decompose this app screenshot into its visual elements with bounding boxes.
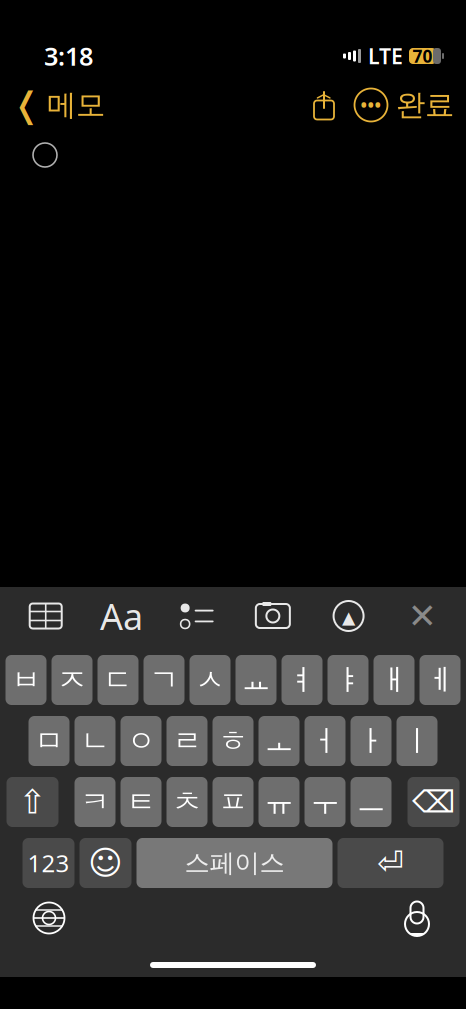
button[interactable]: ㅣ <box>396 716 437 766</box>
staticText: 3:18 <box>44 39 93 73</box>
staticText: ㅂ <box>11 662 40 698</box>
button[interactable]: ㄹ <box>166 716 207 766</box>
button[interactable]: ㄷ <box>97 655 138 705</box>
staticText: ▲ <box>342 608 355 627</box>
button[interactable]: ㅡ <box>350 777 391 827</box>
staticText: ❬ <box>12 85 41 125</box>
button[interactable]: 다음 키보드 <box>22 894 76 942</box>
button[interactable]: 닫기 <box>394 594 450 638</box>
staticText: ⇧ <box>18 783 46 821</box>
button[interactable]: ⇧ <box>6 777 58 827</box>
button[interactable]: ㅎ <box>212 716 253 766</box>
button[interactable]: 받아쓰기 <box>390 894 444 942</box>
staticText: ⌫ <box>412 785 455 819</box>
staticText: ㄷ <box>103 662 132 698</box>
button[interactable]: ㅅ <box>189 655 230 705</box>
button[interactable]: ㅓ <box>304 716 345 766</box>
staticText: ㄴ <box>80 723 109 759</box>
staticText: ㅣ <box>402 723 431 759</box>
staticText: ㅋ <box>80 784 109 820</box>
staticText: ••• <box>360 93 381 116</box>
button[interactable]: ㄴ <box>74 716 115 766</box>
staticText: ︿ <box>316 84 332 104</box>
staticText: ✕ <box>408 596 437 636</box>
button[interactable]: ⌫ <box>407 777 459 827</box>
staticText: 완료 <box>396 87 454 123</box>
staticText: ㅊ <box>172 784 201 820</box>
staticText: ㅕ <box>287 662 316 698</box>
staticText: ㅛ <box>241 662 270 698</box>
staticText: ㅓ <box>310 723 339 759</box>
staticText: ㅎ <box>218 723 247 759</box>
button[interactable]: ㅋ <box>74 777 115 827</box>
button[interactable]: ㅑ <box>327 655 368 705</box>
button[interactable]: ㅌ <box>120 777 161 827</box>
button[interactable]: ❬ <box>0 79 105 131</box>
button[interactable]: 123 <box>22 838 74 888</box>
staticText: ㅌ <box>126 784 155 820</box>
staticText: ㅁ <box>34 723 63 759</box>
staticText: ㅔ <box>425 662 454 698</box>
staticText: ㅇ <box>126 723 155 759</box>
staticText: ㅍ <box>218 784 247 820</box>
staticText: ㅗ <box>264 723 293 759</box>
button[interactable]: ㅗ <box>258 716 299 766</box>
staticText: Aa <box>100 592 143 640</box>
staticText: ㅜ <box>310 784 339 820</box>
button[interactable]: 표 <box>16 594 76 638</box>
staticText: ㅡ <box>356 784 385 820</box>
button[interactable]: 체크리스트 <box>167 594 227 638</box>
button[interactable]: 서식 <box>91 594 151 638</box>
staticText: ⏎ <box>377 845 404 881</box>
button[interactable]: ㅜ <box>304 777 345 827</box>
button[interactable]: ㄱ <box>143 655 184 705</box>
button[interactable]: 공유 <box>302 85 346 125</box>
button[interactable]: ☺ <box>79 838 131 888</box>
staticText: ㅐ <box>379 662 408 698</box>
button[interactable]: ㅊ <box>166 777 207 827</box>
button[interactable]: ㅛ <box>235 655 276 705</box>
button[interactable]: ㅕ <box>281 655 322 705</box>
staticText: ㄹ <box>172 723 201 759</box>
button[interactable]: ㅇ <box>120 716 161 766</box>
button[interactable]: 마크업 <box>319 594 379 638</box>
staticText: 70 <box>412 44 432 67</box>
button[interactable]: ㅁ <box>28 716 69 766</box>
staticText: ☺ <box>88 844 123 882</box>
button[interactable]: 카메라 <box>243 594 303 638</box>
staticText: 메모 <box>47 87 105 123</box>
button[interactable]: ㅏ <box>350 716 391 766</box>
button[interactable]: 추가 옵션 <box>346 83 396 127</box>
staticText: ㅑ <box>333 662 362 698</box>
staticText: ㅠ <box>264 784 293 820</box>
button[interactable]: ㅍ <box>212 777 253 827</box>
button[interactable]: ㅔ <box>419 655 460 705</box>
button[interactable]: 완료 <box>396 81 466 129</box>
staticText: ㅈ <box>57 662 86 698</box>
staticText: ㅏ <box>356 723 385 759</box>
staticText: ㄱ <box>149 662 178 698</box>
staticText: ㅅ <box>195 662 224 698</box>
button[interactable]: ㅂ <box>5 655 46 705</box>
staticText: 123 <box>27 847 69 879</box>
button[interactable]: ㅠ <box>258 777 299 827</box>
staticText: LTE <box>368 42 403 70</box>
button[interactable]: ㅈ <box>51 655 92 705</box>
button[interactable]: ⏎ <box>337 838 443 888</box>
button[interactable]: ㅐ <box>373 655 414 705</box>
staticText: 스페이스 <box>184 847 284 878</box>
button[interactable]: 스페이스 <box>136 838 332 888</box>
